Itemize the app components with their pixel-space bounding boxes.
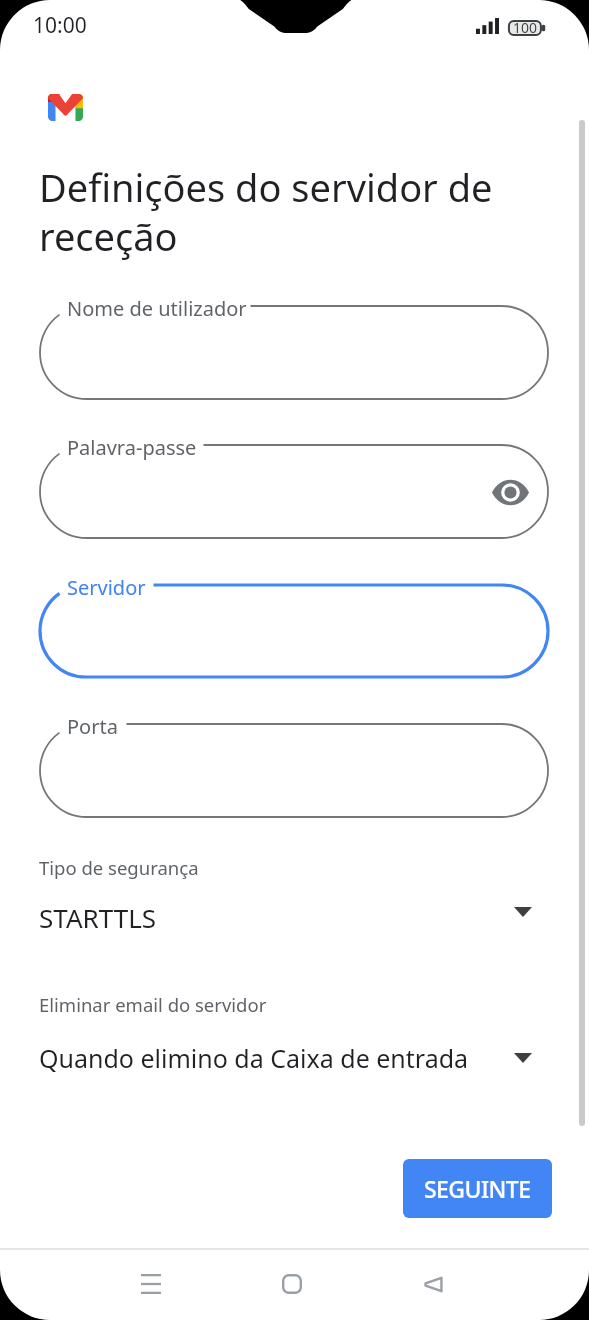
staticText: Eliminar email do servidor bbox=[39, 992, 267, 1017]
staticText: 100 bbox=[513, 18, 538, 37]
staticText: STARTTLS bbox=[39, 900, 157, 935]
button[interactable]: Tipo de segurança bbox=[39, 854, 551, 938]
button[interactable]: SEGUINTE bbox=[403, 1159, 552, 1218]
staticText: Porta bbox=[67, 713, 118, 740]
staticText: SEGUINTE bbox=[424, 1173, 531, 1204]
staticText: Definições do servidor de receção bbox=[39, 161, 509, 262]
button[interactable]: Início bbox=[262, 1254, 322, 1314]
staticText: Tipo de segurança bbox=[39, 855, 199, 880]
staticText: Servidor bbox=[67, 574, 146, 601]
button[interactable]: Recentes bbox=[121, 1254, 181, 1314]
staticText: Quando elimino da Caixa de entrada bbox=[39, 1041, 469, 1075]
button[interactable]: Nome de utilizador bbox=[40, 306, 548, 399]
staticText: 10:00 bbox=[33, 11, 87, 40]
button[interactable]: Mostrar palavra-passe bbox=[488, 470, 532, 514]
button[interactable]: Porta bbox=[40, 724, 548, 817]
staticText: Nome de utilizador bbox=[67, 295, 247, 322]
button[interactable]: Palavra-passe bbox=[40, 445, 548, 538]
button[interactable]: Servidor bbox=[40, 585, 548, 677]
button[interactable]: Eliminar email do servidor bbox=[39, 991, 551, 1075]
staticText: Palavra-passe bbox=[67, 434, 197, 461]
button[interactable]: Retroceder bbox=[402, 1254, 462, 1314]
